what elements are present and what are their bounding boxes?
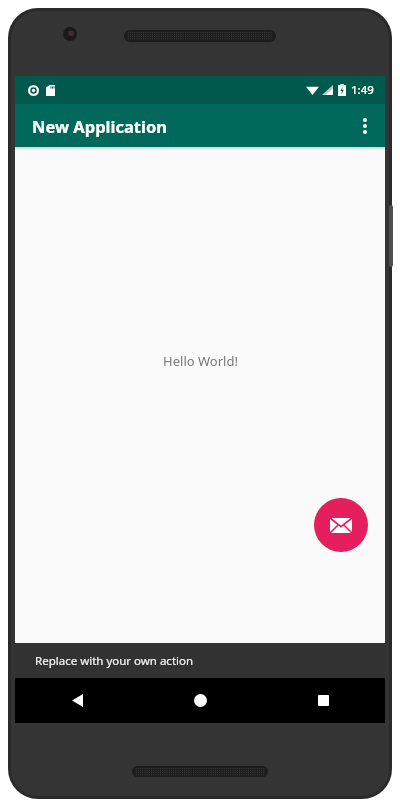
button[interactable]: Send email: [314, 498, 368, 552]
staticText: New Application: [32, 115, 168, 137]
staticText: 1:49: [351, 82, 374, 98]
button[interactable]: Recent apps: [262, 678, 385, 723]
button[interactable]: More options: [345, 104, 385, 147]
button[interactable]: Home: [139, 678, 262, 723]
button[interactable]: Replace with your own action: [15, 643, 385, 678]
staticText: Replace with your own action: [35, 653, 194, 669]
staticText: Hello World!: [163, 352, 238, 370]
button[interactable]: Back: [15, 678, 139, 723]
